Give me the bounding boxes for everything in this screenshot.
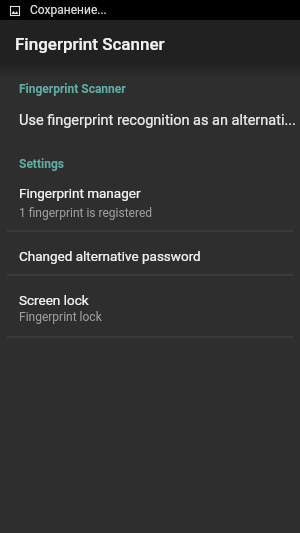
staticText: Settings bbox=[19, 157, 64, 171]
staticText: Fingerprint lock bbox=[19, 310, 102, 324]
button[interactable]: Changed alternative password bbox=[0, 232, 300, 274]
staticText: 1 fingerprint is registered bbox=[19, 206, 153, 220]
button[interactable]: Fingerprint manager bbox=[0, 172, 300, 230]
staticText: Use fingerprint recognition as an altern… bbox=[19, 112, 296, 129]
button[interactable]: Use fingerprint recognition as an altern… bbox=[0, 102, 300, 144]
staticText: Сохранение... bbox=[30, 3, 107, 17]
staticText: Fingerprint Scanner bbox=[15, 34, 165, 54]
staticText: Fingerprint manager bbox=[19, 185, 141, 201]
staticText: Screen lock bbox=[19, 292, 89, 308]
staticText: Fingerprint Scanner bbox=[19, 82, 126, 96]
button[interactable]: Screen lock bbox=[0, 276, 300, 336]
staticText: Changed alternative password bbox=[19, 248, 201, 264]
